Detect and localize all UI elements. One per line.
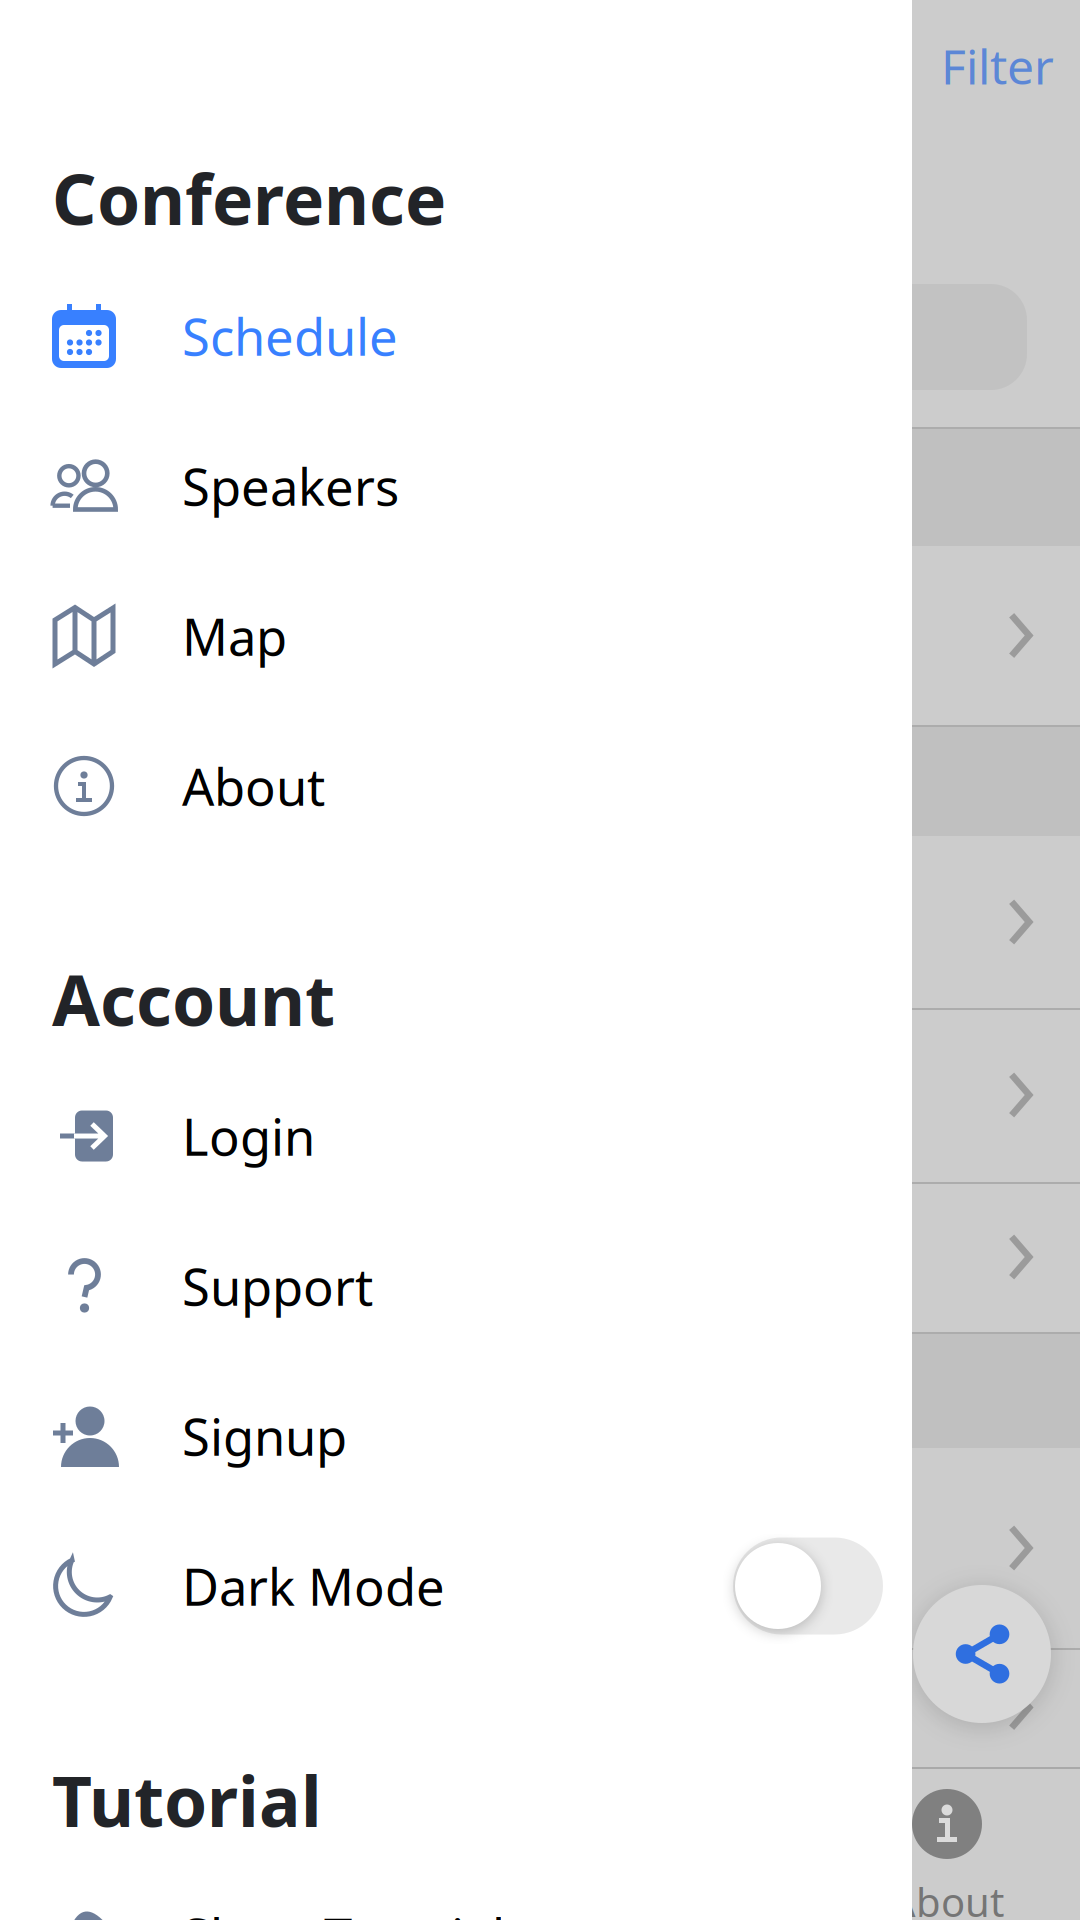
- button[interactable]: Speakers: [0, 411, 912, 561]
- button[interactable]: Map: [0, 561, 912, 711]
- button[interactable]: Search: [47, 284, 1027, 390]
- staticText: Speakers: [182, 452, 399, 520]
- button[interactable]: Schedule: [0, 261, 912, 411]
- button[interactable]: Session: [0, 836, 1080, 1008]
- staticText: About: [890, 1875, 1004, 1920]
- button[interactable]: Session: [0, 1008, 1080, 1182]
- button[interactable]: Session: [0, 1182, 1080, 1332]
- button[interactable]: Signup: [0, 1361, 912, 1511]
- button[interactable]: Session group: [0, 725, 1080, 836]
- button[interactable]: Session group: [0, 427, 1080, 546]
- staticText: Login: [182, 1102, 315, 1170]
- staticText: About: [182, 752, 325, 820]
- staticText: Account: [52, 953, 335, 1045]
- button[interactable]: Share: [913, 1585, 1051, 1723]
- staticText: Conference: [52, 152, 446, 244]
- button[interactable]: Show Tutorial: [0, 1861, 912, 1920]
- button[interactable]: Dark Mode: [0, 1511, 912, 1661]
- button[interactable]: About: [0, 711, 912, 861]
- button[interactable]: About: [837, 1789, 1057, 1920]
- staticText: Signup: [182, 1402, 347, 1470]
- button[interactable]: Filter: [921, 20, 1074, 112]
- staticText: Tutorial: [52, 1754, 322, 1846]
- staticText: Show Tutorial: [182, 1902, 505, 1920]
- button[interactable]: Login: [0, 1061, 912, 1211]
- staticText: Dark Mode: [182, 1552, 445, 1620]
- button[interactable]: Support: [0, 1211, 912, 1361]
- staticText: Filter: [941, 34, 1054, 98]
- button[interactable]: Session: [0, 1648, 1080, 1767]
- staticText: Map: [182, 602, 287, 670]
- staticText: Support: [182, 1252, 373, 1320]
- button[interactable]: Session group: [0, 1332, 1080, 1448]
- button[interactable]: Session: [0, 1448, 1080, 1648]
- staticText: Schedule: [182, 302, 398, 370]
- button[interactable]: Session: [0, 546, 1080, 725]
